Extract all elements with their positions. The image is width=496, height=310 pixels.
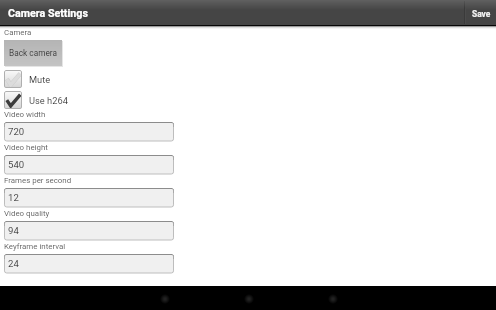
button[interactable]: 24 (4, 254, 174, 274)
staticText: Use h264 (29, 95, 68, 106)
button[interactable]: 12 (4, 188, 174, 208)
staticText: Video height (4, 143, 48, 152)
button[interactable]: 720 (4, 122, 174, 142)
button[interactable]: Back (153, 286, 177, 310)
staticText: Mute (29, 74, 51, 85)
staticText: 720 (8, 126, 25, 137)
staticText: 540 (8, 159, 25, 170)
button[interactable]: 94 (4, 221, 174, 241)
staticText: Frames per second (4, 176, 72, 185)
staticText: Keyframe interval (4, 242, 66, 251)
staticText: Video quality (4, 209, 50, 218)
button[interactable]: Recent apps (321, 286, 345, 310)
button[interactable]: Save (466, 1, 496, 26)
staticText: 24 (8, 258, 19, 269)
button[interactable]: Mute (4, 70, 22, 88)
staticText: Save (472, 9, 491, 19)
staticText: Back camera (9, 48, 57, 58)
staticText: 12 (8, 192, 19, 203)
staticText: 94 (8, 225, 19, 236)
staticText: Camera (4, 28, 32, 37)
button[interactable]: Home (237, 286, 261, 310)
button[interactable]: 540 (4, 155, 174, 175)
staticText: Camera Settings (8, 7, 88, 20)
button[interactable]: Back camera (4, 40, 62, 66)
button[interactable]: Use h264 (4, 91, 22, 109)
staticText: Video width (4, 110, 46, 119)
